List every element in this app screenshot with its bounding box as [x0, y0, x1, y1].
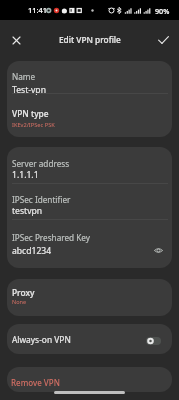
staticText: Remove VPN — [11, 377, 60, 388]
button[interactable]: Always-on VPN — [146, 337, 161, 345]
button[interactable]: Server address — [7, 147, 172, 183]
button[interactable]: IPSec Identifier — [7, 183, 172, 219]
staticText: Edit VPN profile — [59, 34, 121, 45]
staticText: testvpn — [12, 205, 43, 217]
staticText: 90% — [155, 6, 170, 16]
staticText: abcd1234 — [12, 245, 52, 257]
staticText: Name — [12, 71, 36, 82]
staticText: Test-vpn — [12, 84, 46, 96]
staticText: Server address — [12, 158, 70, 169]
button[interactable]: Show password — [152, 244, 164, 256]
button[interactable]: Name — [7, 61, 172, 92]
button[interactable]: Save — [151, 28, 175, 52]
staticText: 1.1.1.1 — [12, 169, 39, 181]
button[interactable]: Always-on VPN — [7, 324, 172, 354]
staticText: Always-on VPN — [12, 334, 71, 345]
staticText: IPSec Identifier — [12, 194, 71, 205]
button[interactable]: Close — [4, 28, 28, 52]
staticText: Proxy — [12, 287, 35, 298]
button[interactable]: Proxy — [7, 279, 172, 316]
button[interactable]: Remove VPN — [7, 367, 172, 392]
button[interactable]: IPSec Preshared Key — [7, 220, 172, 268]
staticText: 11:41 — [28, 5, 47, 15]
staticText: IKEv2/IPSec PSK — [12, 121, 55, 129]
staticText: None — [12, 298, 27, 305]
staticText: IPSec Preshared Key — [12, 232, 90, 243]
staticText: VPN type — [12, 108, 49, 119]
button[interactable]: VPN type — [7, 93, 172, 137]
